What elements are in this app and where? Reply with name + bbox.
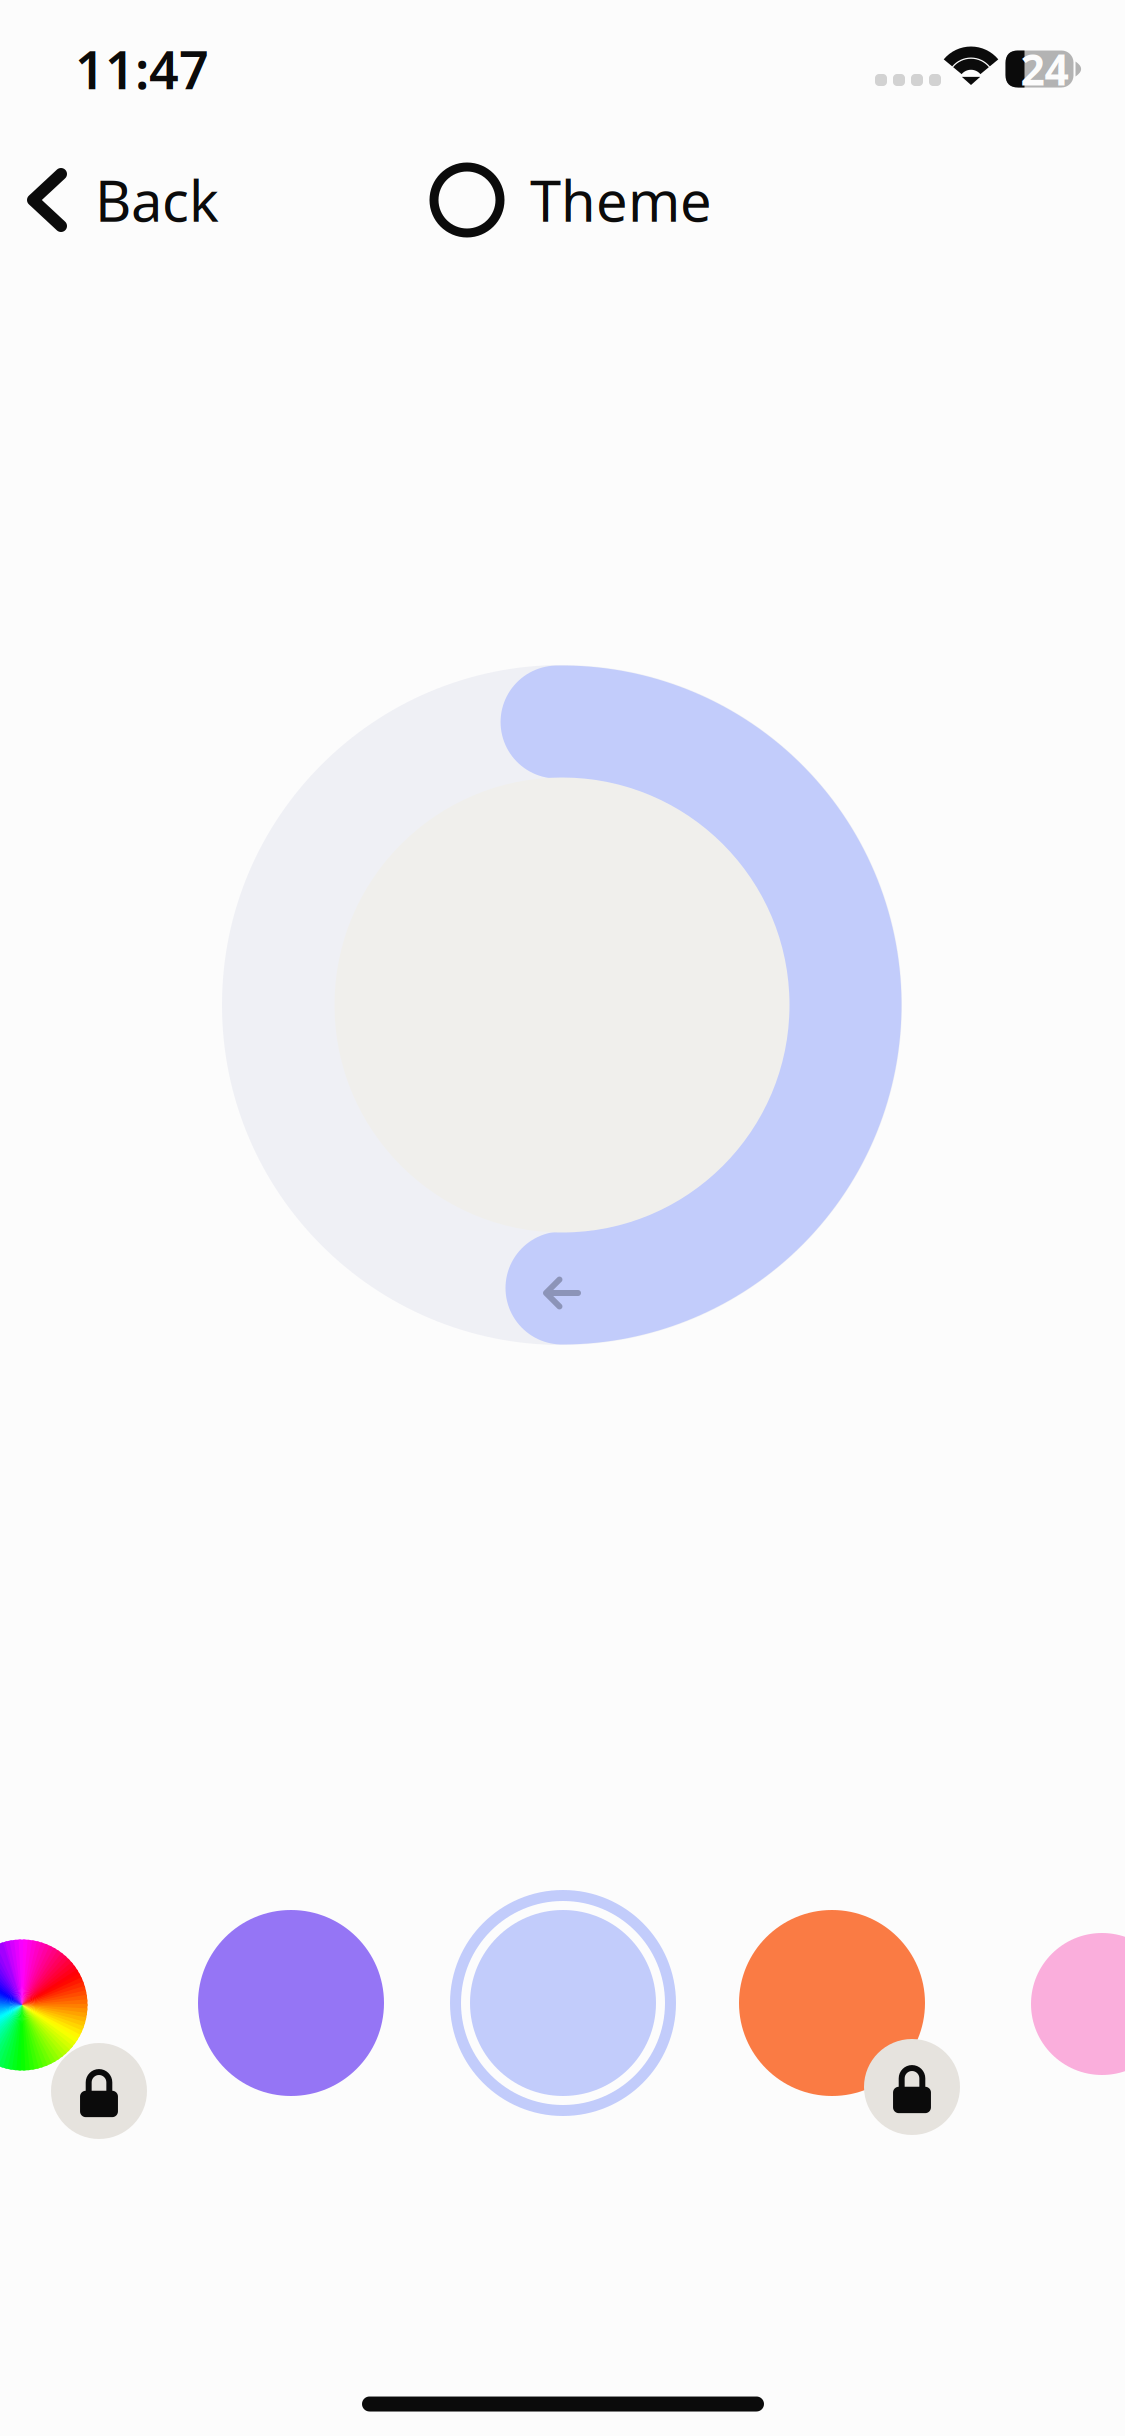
staticText: 24 <box>1020 41 1068 97</box>
staticText: 11:47 <box>75 34 209 104</box>
button[interactable]: Theme colour <box>141 1853 441 2153</box>
button[interactable]: Custom colour, locked <box>0 1855 172 2155</box>
staticText: Back <box>95 163 219 237</box>
button[interactable]: Theme colour, locked <box>682 1853 982 2153</box>
button[interactable]: Theme colour, selected <box>413 1853 713 2153</box>
staticText: Theme <box>530 163 712 237</box>
button[interactable]: Theme colour <box>952 1854 1125 2154</box>
button[interactable]: Back <box>7 139 245 261</box>
